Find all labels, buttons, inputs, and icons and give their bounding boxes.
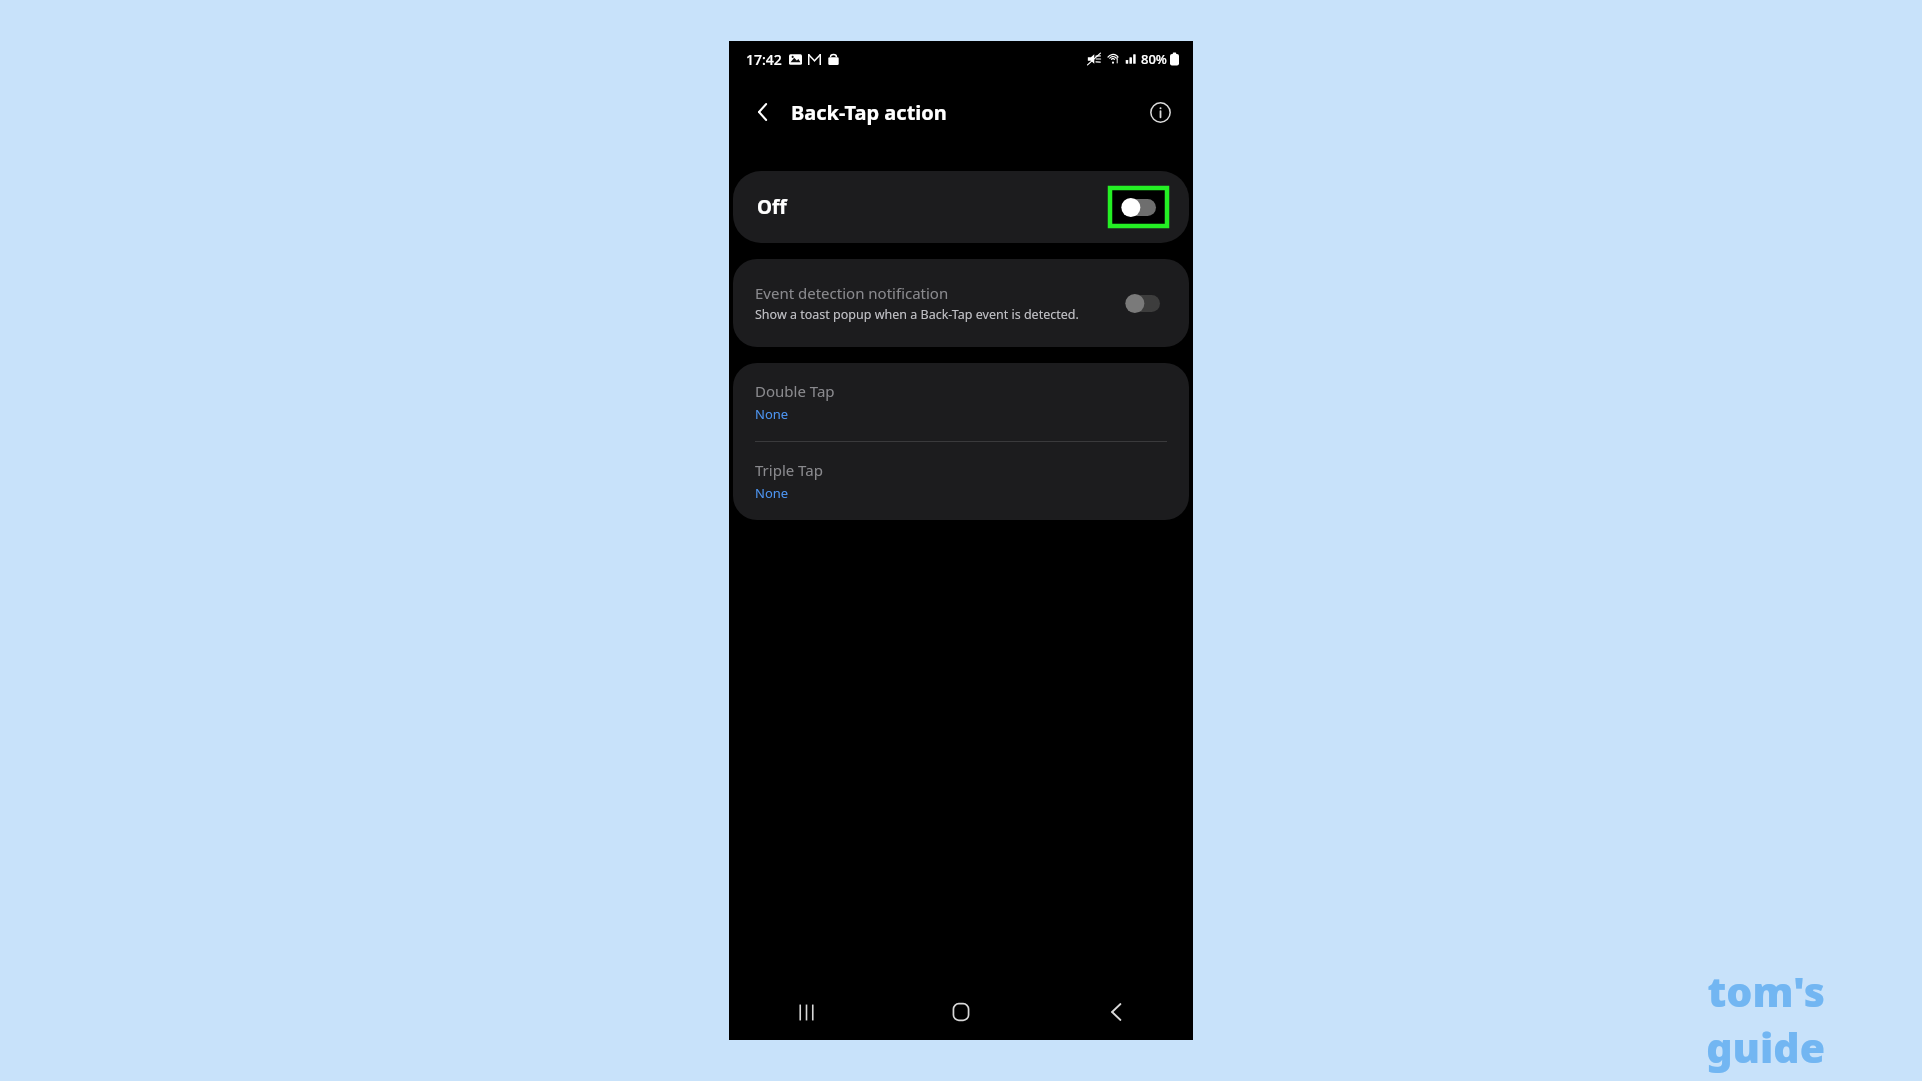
staticText: Off [757,194,787,220]
staticText: None [755,405,789,423]
staticText: 80% [1141,50,1167,68]
staticText: Event detection notification [755,283,949,303]
button[interactable]: Toggle [1119,288,1167,318]
staticText: Back-Tap action [791,99,947,126]
staticText: tom's [1707,963,1825,1019]
button[interactable]: Triple Tap [733,442,1189,520]
staticText: Triple Tap [755,460,823,480]
button[interactable]: Home [883,984,1038,1040]
button[interactable]: Back [1038,984,1193,1040]
staticText: None [755,484,789,502]
button[interactable]: Back [741,90,785,134]
button[interactable]: Double Tap [733,363,1189,441]
button[interactable]: Toggle [1110,188,1167,226]
button[interactable]: Information [1139,91,1181,133]
staticText: guide [1706,1019,1825,1075]
button[interactable]: Recents [729,984,883,1040]
staticText: 17:42 [746,50,782,69]
staticText: Show a toast popup when a Back-Tap event… [755,306,1079,323]
button[interactable]: Off [733,171,1189,243]
staticText: Double Tap [755,381,835,401]
button[interactable]: Event detection notification [733,259,1189,347]
